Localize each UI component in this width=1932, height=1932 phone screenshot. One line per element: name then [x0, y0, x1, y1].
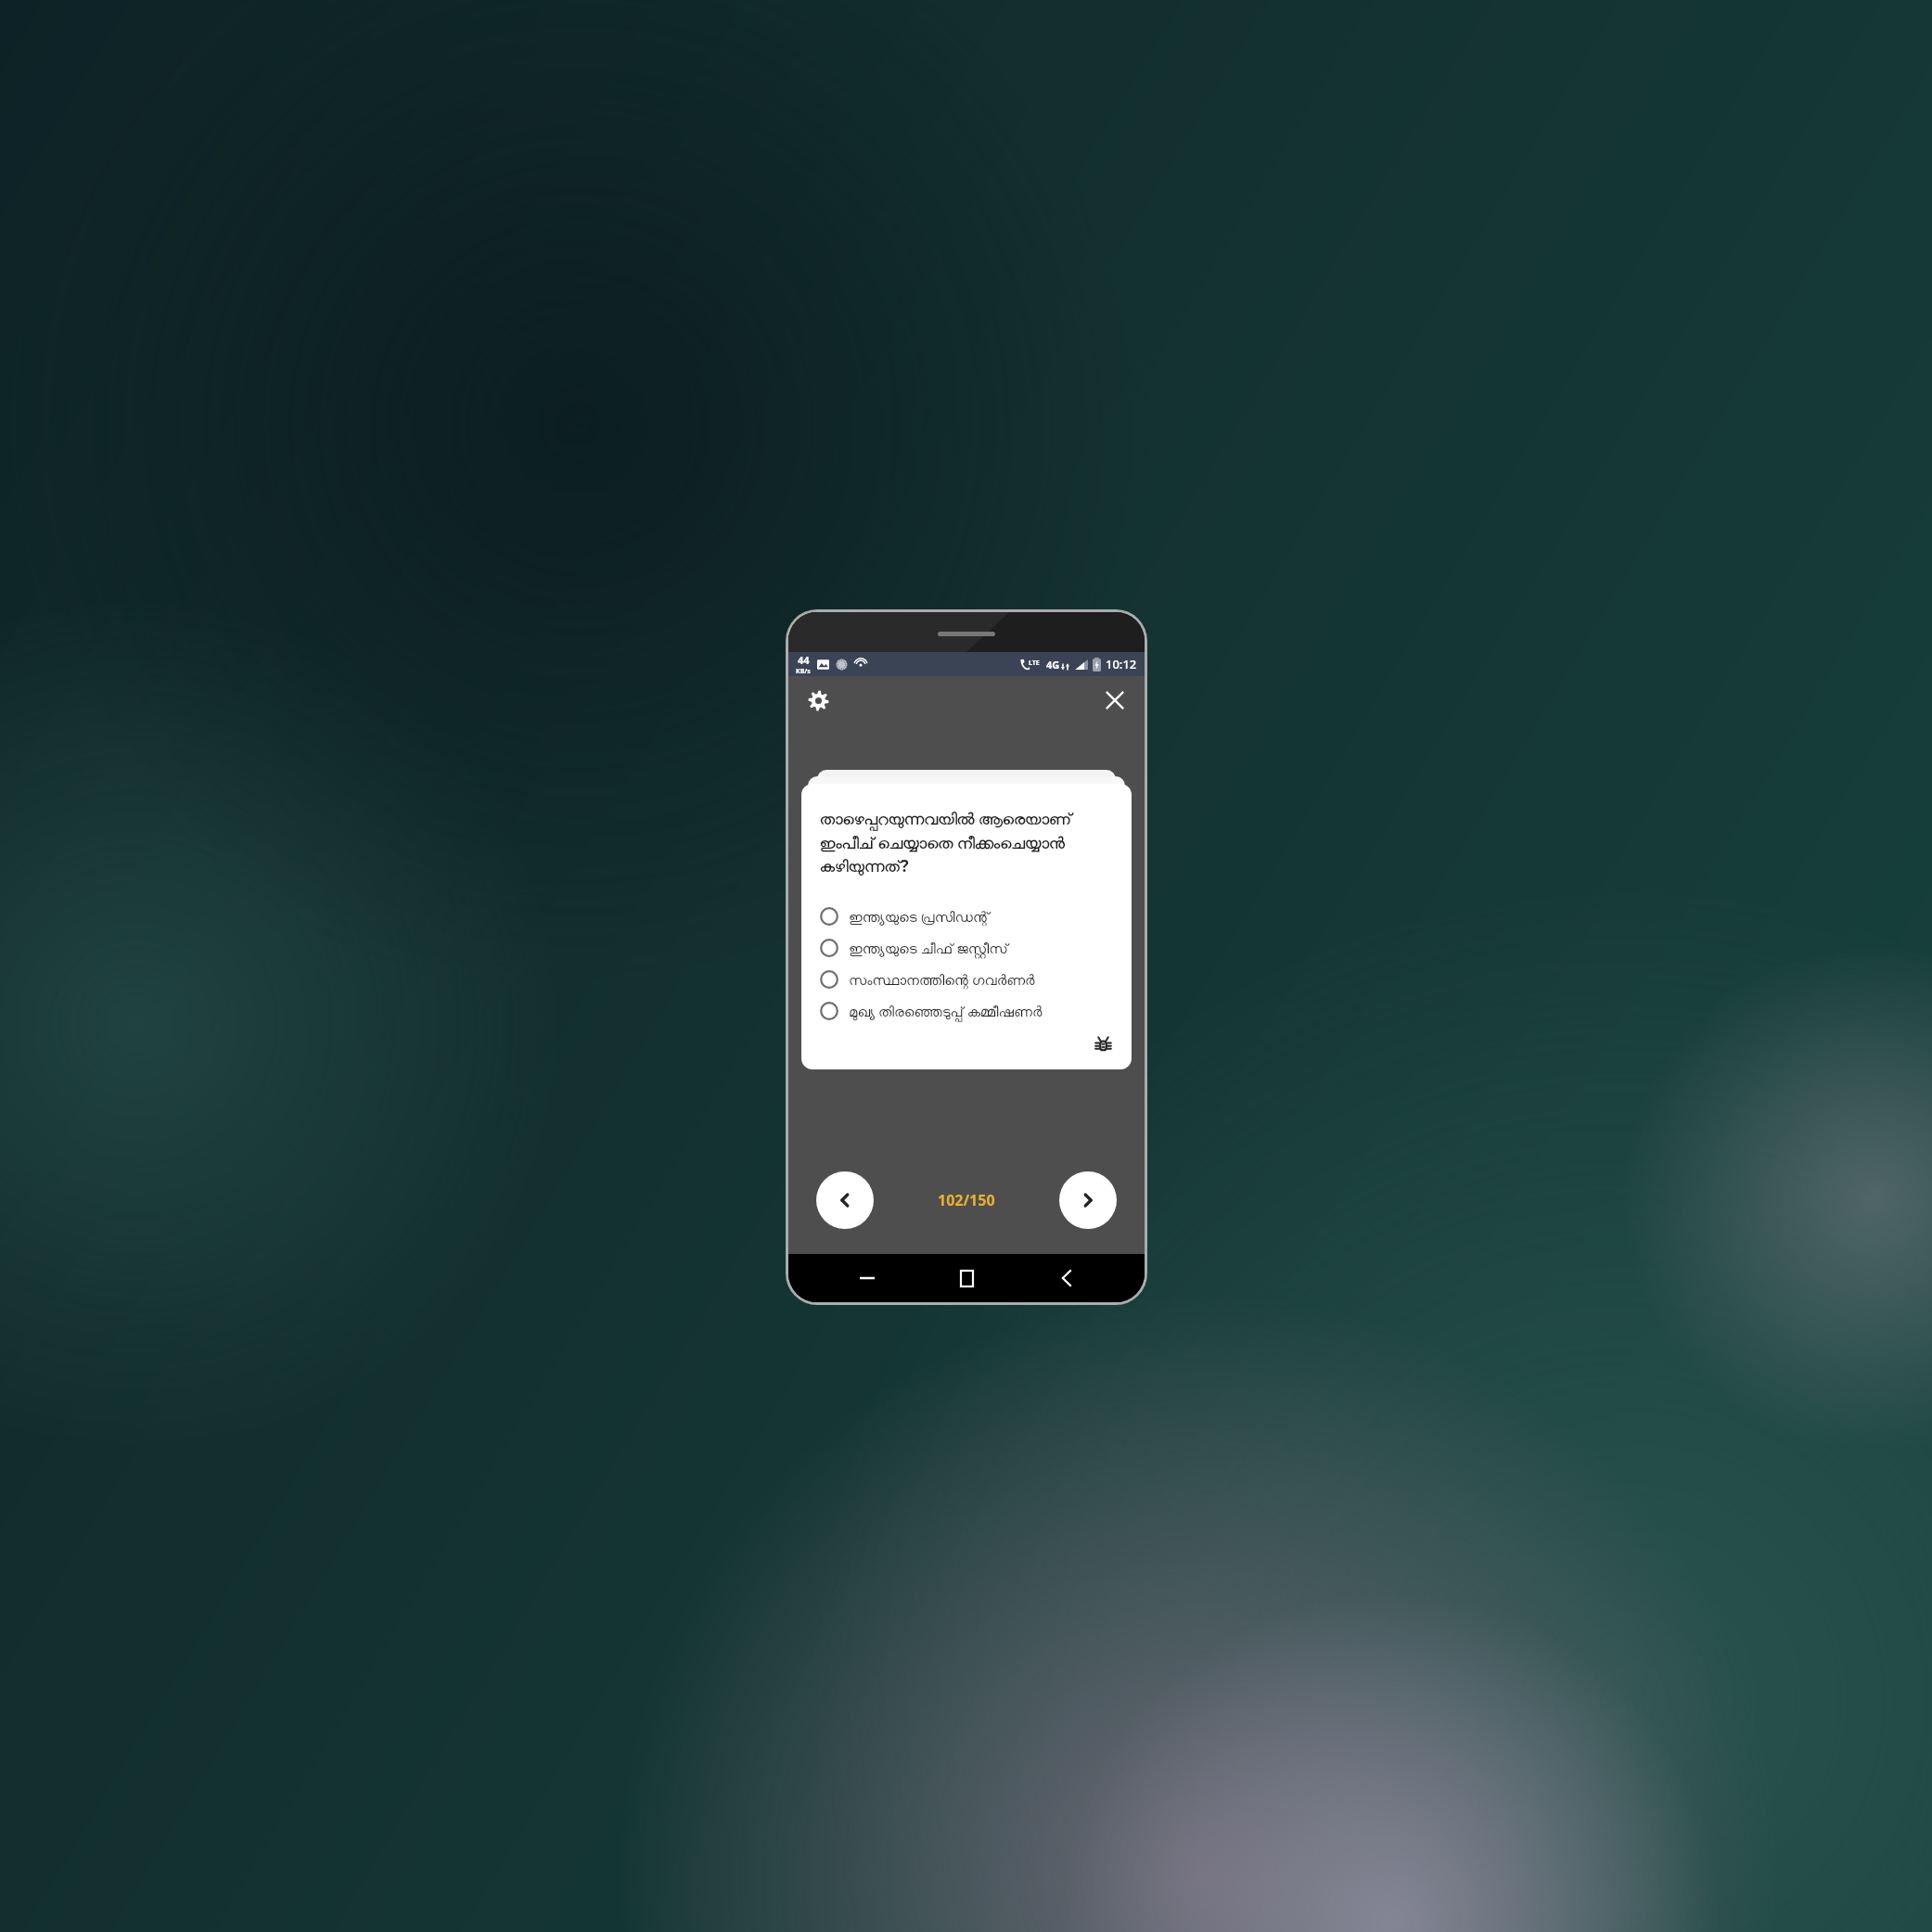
button[interactable]: ഇന്ത്യയുടെ പ്രസിഡന്റ് — [820, 901, 1117, 932]
staticText: ഇന്ത്യയുടെ പ്രസിഡന്റ് — [849, 907, 990, 926]
button[interactable]: Report a bug — [1089, 1030, 1117, 1058]
staticText: മുഖ്യ തിരഞ്ഞെടുപ്പ് കമ്മീഷണർ — [849, 1002, 1043, 1020]
staticText: 44 — [798, 653, 810, 667]
staticText: LTE — [1029, 659, 1040, 668]
staticText: 102/150 — [938, 1190, 995, 1210]
staticText: സംസ്ഥാനത്തിന്റെ ഗവർണർ — [849, 970, 1035, 989]
staticText: 10:12 — [1106, 656, 1137, 672]
button[interactable]: മുഖ്യ തിരഞ്ഞെടുപ്പ് കമ്മീഷണർ — [820, 995, 1117, 1027]
staticText: ഇന്ത്യയുടെ ചീഫ് ജസ്റ്റീസ് — [849, 939, 1008, 957]
button[interactable]: Next question — [1059, 1171, 1117, 1229]
staticText: താഴെപ്പറയുന്നവയിൽ ആരെയാണ് ഇംപീച് ചെയ്യാത… — [820, 808, 1117, 876]
button[interactable]: Previous question — [816, 1171, 874, 1229]
button[interactable]: ഇന്ത്യയുടെ ചീഫ് ജസ്റ്റീസ് — [820, 932, 1117, 964]
button[interactable]: Home — [945, 1257, 988, 1299]
button[interactable]: Settings — [798, 680, 838, 721]
button[interactable]: സംസ്ഥാനത്തിന്റെ ഗവർണർ — [820, 964, 1117, 995]
button[interactable]: Back — [1045, 1257, 1088, 1299]
staticText: 4G — [1046, 658, 1060, 672]
button[interactable]: Back to home — [846, 1257, 889, 1299]
staticText: KB/s — [796, 667, 811, 676]
button[interactable]: Close — [1094, 680, 1135, 721]
button[interactable]: താഴെപ്പറയുന്നവയിൽ ആരെയാണ് ഇംപീച് ചെയ്യാത… — [801, 784, 1132, 1069]
